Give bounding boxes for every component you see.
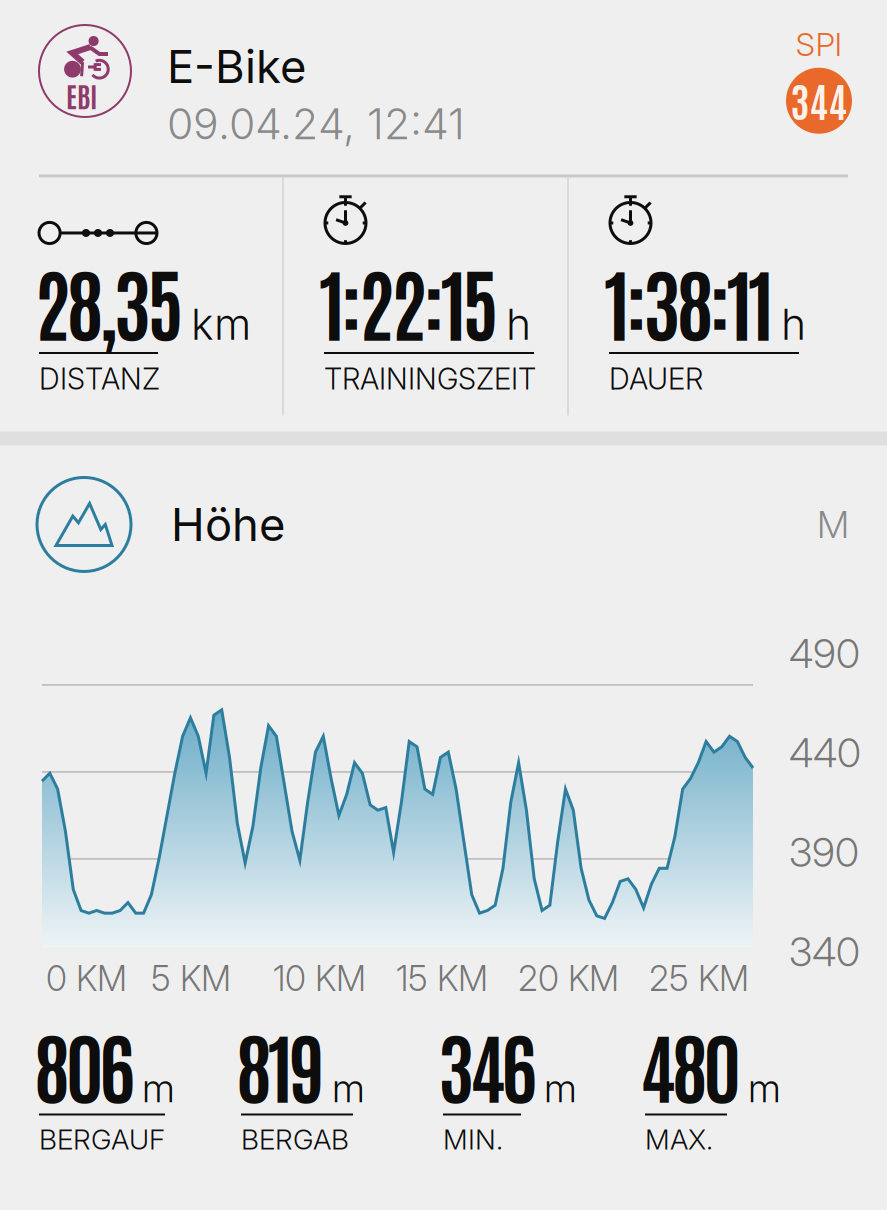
staticText: h bbox=[781, 298, 806, 350]
staticText: 1:22:15 bbox=[319, 248, 499, 352]
staticText: 20 KM bbox=[518, 957, 619, 999]
staticText: DAUER bbox=[609, 361, 703, 396]
staticText: 346 bbox=[438, 1013, 537, 1113]
staticText: BERGAB bbox=[241, 1122, 349, 1156]
staticText: m bbox=[142, 1065, 174, 1111]
staticText: h bbox=[506, 298, 531, 350]
staticText: EBI bbox=[66, 77, 97, 113]
staticText: TRAININGSZEIT bbox=[324, 361, 536, 396]
staticText: 390 bbox=[789, 828, 859, 876]
staticText: 28,35 bbox=[34, 248, 184, 352]
staticText: 480 bbox=[640, 1013, 741, 1113]
staticText: DISTANZ bbox=[39, 361, 160, 396]
staticText: E-Bike bbox=[167, 39, 306, 94]
staticText: 25 KM bbox=[649, 957, 749, 999]
staticText: M bbox=[817, 502, 849, 547]
staticText: 440 bbox=[789, 729, 861, 777]
staticText: 09.04.24, 12:41 bbox=[167, 98, 465, 149]
staticText: SPI bbox=[795, 25, 842, 64]
staticText: 819 bbox=[236, 1013, 325, 1113]
staticText: MIN. bbox=[443, 1122, 503, 1156]
staticText: m bbox=[544, 1065, 576, 1111]
staticText: BERGAUF bbox=[39, 1122, 165, 1156]
staticText: 344 bbox=[790, 74, 847, 126]
staticText: MAX. bbox=[645, 1122, 713, 1156]
staticText: 5 KM bbox=[151, 957, 231, 999]
staticText: m bbox=[332, 1065, 364, 1111]
staticText: 0 KM bbox=[46, 957, 127, 999]
staticText: m bbox=[748, 1065, 780, 1111]
staticText: 806 bbox=[34, 1013, 135, 1113]
staticText: 490 bbox=[789, 629, 860, 678]
staticText: 15 KM bbox=[396, 957, 488, 999]
staticText: Höhe bbox=[171, 497, 285, 552]
staticText: 340 bbox=[789, 927, 860, 976]
staticText: km bbox=[191, 298, 251, 350]
staticText: 10 KM bbox=[273, 957, 366, 999]
staticText: 1:38:11 bbox=[604, 248, 774, 352]
